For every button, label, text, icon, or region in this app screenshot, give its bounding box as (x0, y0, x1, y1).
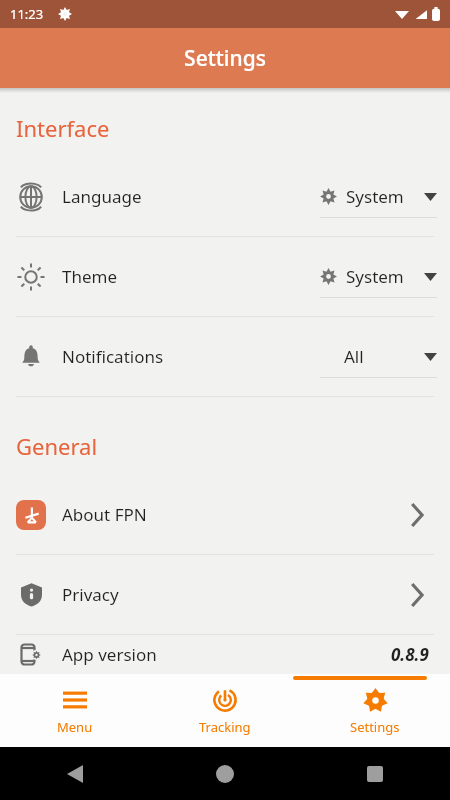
staticText: 11:23 (10, 5, 44, 23)
staticText: Privacy (62, 583, 119, 606)
button[interactable]: Open About FPN (400, 498, 434, 532)
button[interactable]: Privacy (0, 555, 450, 634)
button[interactable]: Notifications (0, 317, 450, 396)
staticText: 0.8.9 (391, 643, 429, 666)
other: Back (67, 765, 83, 783)
staticText: Notifications (62, 345, 164, 368)
staticText: General (16, 431, 98, 461)
button[interactable]: Open Privacy (400, 578, 434, 612)
staticText: Settings (184, 44, 266, 73)
other: Home (216, 765, 234, 783)
button[interactable]: Settings (300, 674, 450, 747)
staticText: Tracking (199, 718, 251, 736)
staticText: System (346, 265, 404, 288)
staticText: About FPN (62, 503, 147, 526)
button[interactable]: Theme (0, 237, 450, 316)
staticText: App version (62, 643, 157, 666)
button[interactable]: Language (0, 157, 450, 236)
staticText: Settings (350, 718, 400, 736)
other: Recents (367, 766, 383, 782)
staticText: Language (62, 185, 142, 208)
staticText: All (344, 345, 364, 368)
button[interactable]: App version (0, 635, 450, 674)
staticText: Menu (57, 718, 93, 736)
button[interactable]: Menu (0, 674, 150, 747)
staticText: Interface (16, 113, 110, 143)
staticText: Theme (62, 265, 118, 288)
staticText: System (346, 185, 404, 208)
button[interactable]: Tracking (150, 674, 300, 747)
button[interactable]: About FPN (0, 475, 450, 554)
